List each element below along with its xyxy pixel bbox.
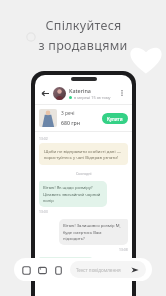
staticText: 13:02 xyxy=(39,136,48,141)
button[interactable]: Attach file xyxy=(52,264,64,276)
button[interactable]: Back xyxy=(39,87,51,99)
staticText: Текст повідомлення xyxy=(76,267,129,273)
button[interactable]: Attach image xyxy=(36,264,48,276)
button[interactable]: Текст повідомлення xyxy=(70,261,146,278)
button[interactable]: Send xyxy=(129,264,140,275)
button[interactable]: 3 речі xyxy=(35,105,132,131)
staticText: Сьогодні xyxy=(76,171,92,176)
staticText: з продавцями xyxy=(38,37,128,54)
button[interactable]: Купити xyxy=(102,113,128,124)
staticText: Купити xyxy=(107,116,123,122)
button[interactable]: More options xyxy=(116,87,128,99)
staticText: 13:03 xyxy=(39,209,48,214)
staticText: Вітаю! Як щодо розміру? Цікавить звичайн… xyxy=(43,185,103,203)
staticText: Щоби не відправити особисті дані — корис… xyxy=(44,148,123,160)
button[interactable]: Вітаю! Залишився розмір М, буде смертись… xyxy=(59,219,128,245)
staticText: Супер, підходить! xyxy=(43,261,79,267)
staticText: 3 речі xyxy=(61,110,75,117)
staticText: Katerina xyxy=(69,87,91,94)
staticText: 13:08 xyxy=(119,247,128,252)
staticText: Вітаю! Залишився розмір М, буде смертись… xyxy=(63,223,124,241)
button[interactable]: Emoji xyxy=(20,264,32,276)
button[interactable]: Супер, підходить! xyxy=(39,257,94,271)
button[interactable]: Вітаю! Як щодо розміру? Цікавить звичайн… xyxy=(39,181,107,207)
button[interactable] xyxy=(53,87,66,100)
staticText: 680 грн xyxy=(61,119,81,126)
staticText: Спілкуйтеся xyxy=(45,17,122,34)
staticText: 13:09 xyxy=(39,273,48,278)
staticText: в мережі 15 хв тому xyxy=(74,95,111,100)
